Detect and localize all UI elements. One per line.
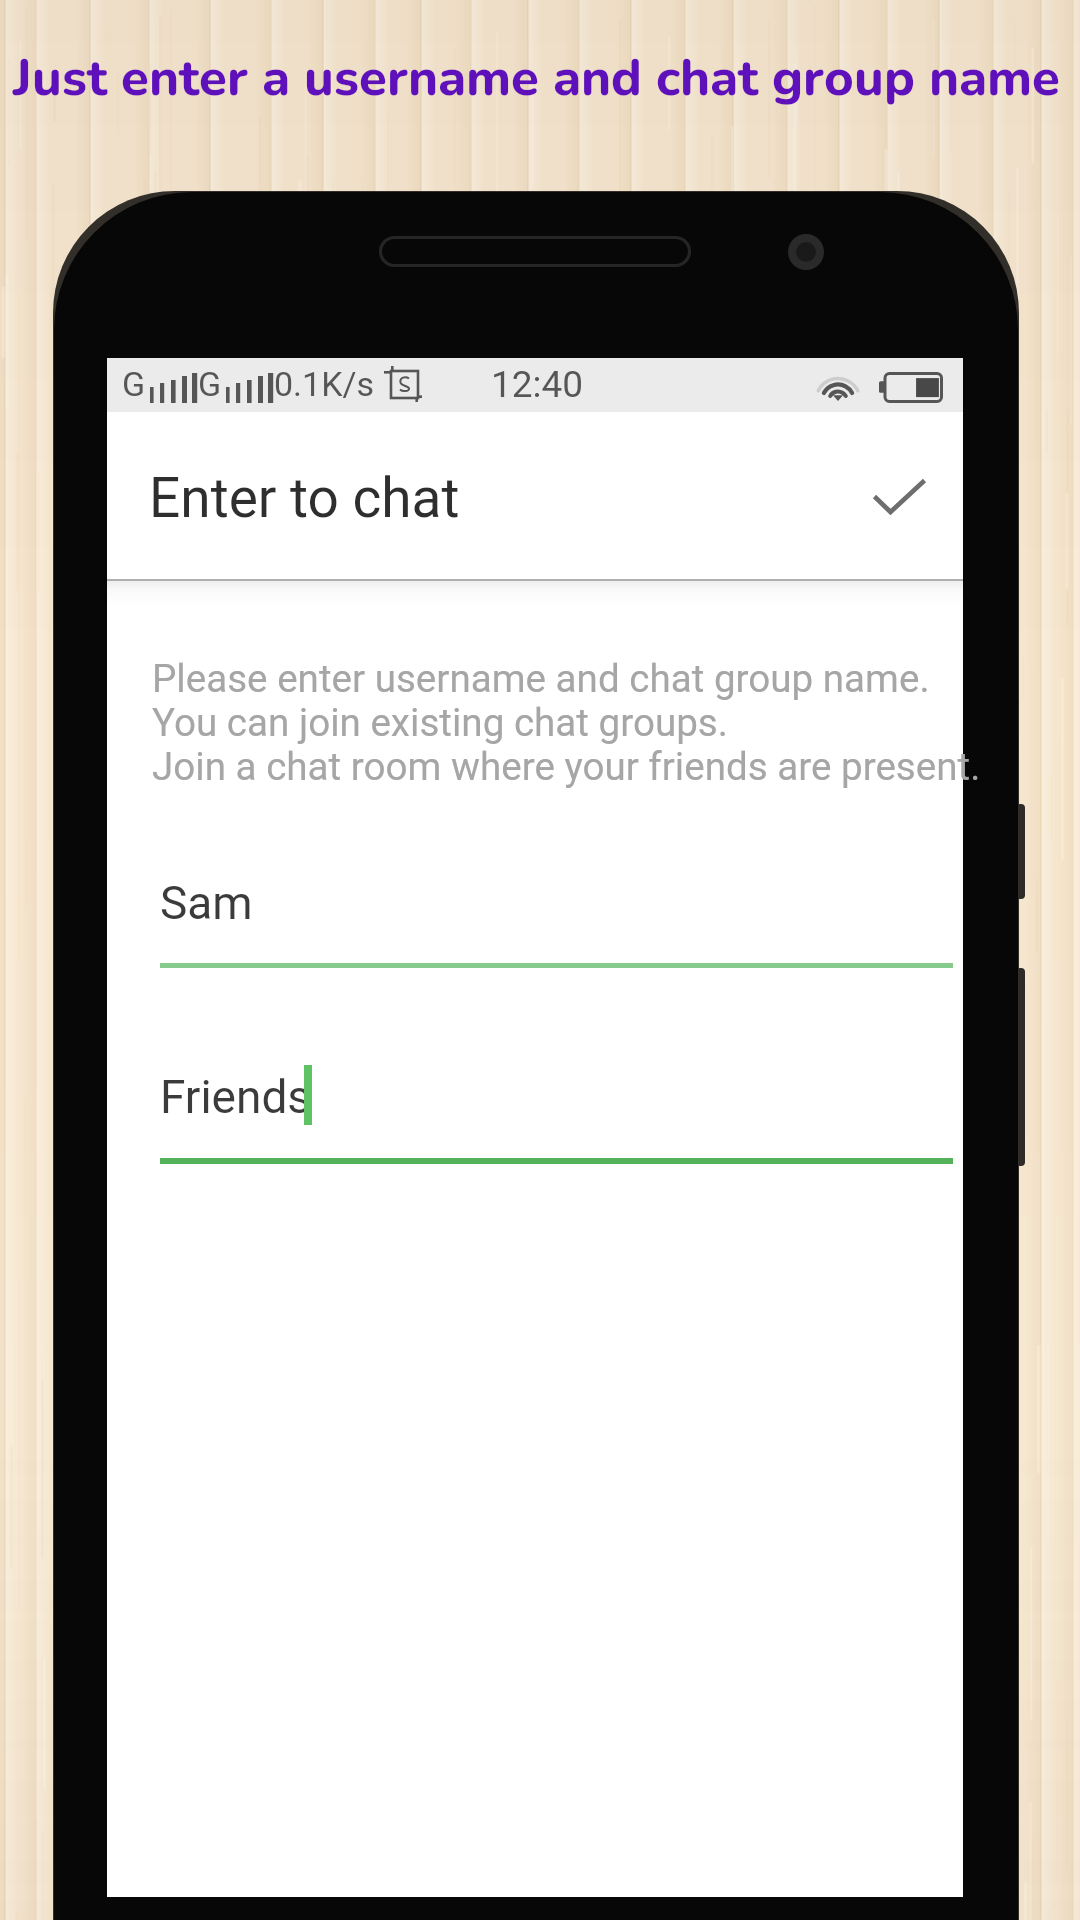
- other: Volume button: [1008, 968, 1025, 1166]
- staticText: 0.1K/s: [274, 364, 375, 404]
- button[interactable]: Done: [849, 446, 949, 546]
- staticText: Friends: [160, 1070, 312, 1124]
- staticText: Please enter username and chat group nam…: [152, 656, 981, 789]
- button[interactable]: Friends: [107, 1058, 963, 1176]
- staticText: Sam: [160, 876, 253, 930]
- staticText: Enter to chat: [149, 466, 460, 530]
- staticText: 12:40: [491, 363, 584, 406]
- other: Power button: [1008, 804, 1025, 899]
- staticText: G: [198, 364, 222, 404]
- button[interactable]: Sam: [107, 864, 963, 982]
- staticText: G: [122, 364, 146, 404]
